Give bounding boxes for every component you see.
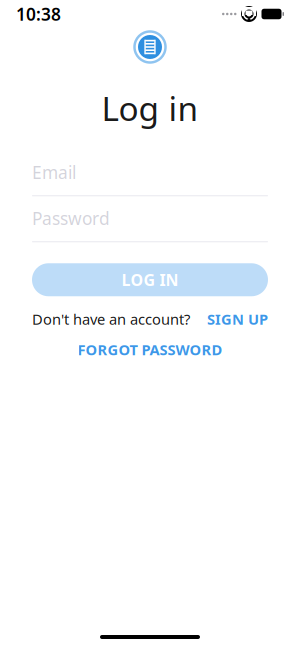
staticText: Email [32,161,76,184]
staticText: FORGOT PASSWORD [77,340,222,359]
staticText: SIGN UP [207,309,268,329]
button[interactable]: FORGOT PASSWORD [32,340,268,359]
staticText: Password [32,207,110,230]
staticText: Don't have an account? [32,309,190,329]
button[interactable]: LOG IN [32,263,268,296]
staticText: 10:38 [16,2,61,25]
staticText: LOG IN [121,269,178,290]
button[interactable]: SIGN UP [207,309,268,329]
staticText: Log in [101,86,198,130]
